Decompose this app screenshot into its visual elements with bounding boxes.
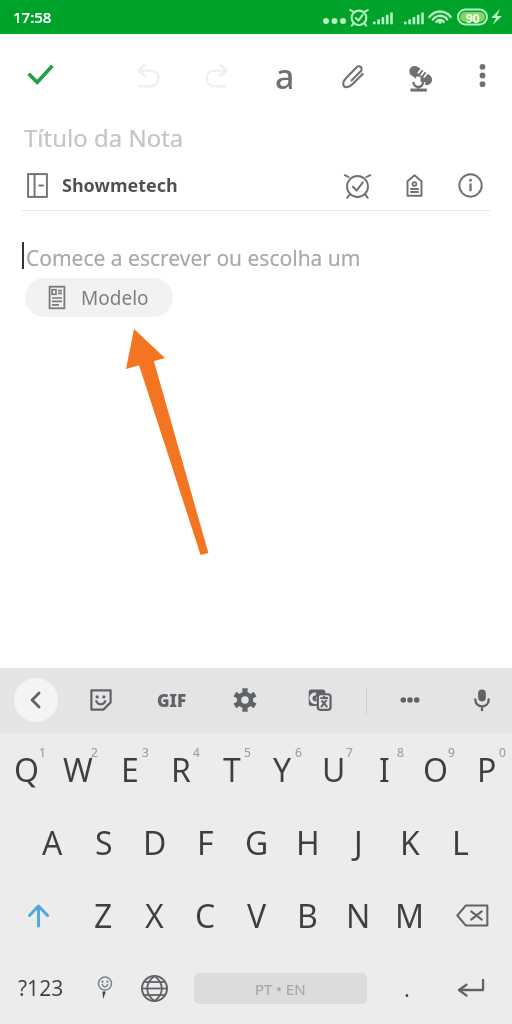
staticText: 5: [244, 744, 251, 760]
button[interactable]: GIF: [148, 678, 196, 722]
button[interactable]: Voice input: [460, 678, 504, 722]
button[interactable]: T: [206, 733, 257, 806]
staticText: 2: [91, 744, 98, 760]
button[interactable]: C: [180, 879, 231, 952]
staticText: a: [275, 53, 295, 97]
button[interactable]: W: [52, 733, 104, 806]
staticText: M: [395, 894, 425, 938]
staticText: O: [423, 748, 448, 792]
staticText: Comece a escrever ou escolha um: [26, 244, 361, 273]
button[interactable]: ?123: [0, 952, 82, 1024]
button[interactable]: Reminder: [339, 167, 375, 203]
button[interactable]: B: [282, 879, 333, 952]
button[interactable]: H: [282, 806, 333, 879]
staticText: U: [322, 748, 346, 792]
staticText: GIF: [157, 689, 187, 712]
button[interactable]: G: [231, 806, 282, 879]
button[interactable]: Info: [452, 167, 488, 203]
button[interactable]: Backspace: [437, 879, 507, 952]
staticText: D: [143, 821, 167, 865]
button[interactable]: PT • EN: [194, 973, 367, 1004]
staticText: 3: [142, 744, 149, 760]
staticText: Z: [94, 894, 113, 938]
staticText: V: [247, 894, 267, 938]
staticText: 17:58: [13, 7, 52, 27]
staticText: L: [452, 821, 469, 865]
staticText: 6: [295, 744, 302, 760]
button[interactable]: Attach: [330, 53, 374, 97]
button[interactable]: .: [380, 952, 434, 1024]
button[interactable]: V: [231, 879, 282, 952]
button[interactable]: D: [129, 806, 180, 879]
button[interactable]: N: [333, 879, 384, 952]
staticText: A: [42, 821, 63, 865]
button[interactable]: Translate: [298, 678, 342, 722]
staticText: H: [296, 821, 320, 865]
button[interactable]: Keyboard settings: [223, 678, 267, 722]
staticText: X: [145, 894, 164, 938]
button[interactable]: Shift: [0, 879, 77, 952]
button[interactable]: F: [180, 806, 231, 879]
button[interactable]: Change language: [128, 952, 180, 1024]
button[interactable]: Save note: [18, 53, 62, 97]
staticText: E: [121, 748, 139, 792]
staticText: .: [404, 973, 410, 1003]
button[interactable]: Q: [0, 733, 52, 806]
button[interactable]: M: [384, 879, 435, 952]
button[interactable]: Stickers: [79, 678, 123, 722]
button[interactable]: More options: [460, 53, 504, 97]
staticText: K: [400, 821, 420, 865]
button[interactable]: U: [308, 733, 359, 806]
staticText: C: [195, 894, 216, 938]
button[interactable]: A: [27, 806, 78, 879]
button[interactable]: Modelo: [25, 278, 173, 317]
staticText: Y: [273, 748, 292, 792]
staticText: Modelo: [81, 285, 149, 311]
button[interactable]: Z: [77, 879, 129, 952]
button[interactable]: Voice typing: [398, 53, 442, 97]
button[interactable]: I: [359, 733, 410, 806]
staticText: J: [354, 821, 363, 865]
staticText: 4: [193, 744, 200, 760]
button[interactable]: Redo: [194, 53, 238, 97]
staticText: W: [63, 748, 93, 792]
button[interactable]: P: [461, 733, 512, 806]
button[interactable]: E: [104, 733, 155, 806]
staticText: 1: [39, 744, 46, 760]
staticText: P: [477, 748, 497, 792]
button[interactable]: K: [384, 806, 435, 879]
button[interactable]: R: [155, 733, 206, 806]
staticText: Q: [14, 748, 39, 792]
button[interactable]: J: [333, 806, 384, 879]
button[interactable]: Y: [257, 733, 308, 806]
button[interactable]: More: [388, 678, 432, 722]
staticText: Showmetech: [62, 173, 178, 198]
staticText: 0: [499, 744, 506, 760]
staticText: B: [297, 894, 318, 938]
button[interactable]: Enter: [436, 952, 506, 1024]
staticText: 9: [448, 744, 455, 760]
staticText: S: [95, 821, 113, 865]
staticText: T: [223, 748, 241, 792]
button[interactable]: L: [435, 806, 486, 879]
staticText: 90: [466, 10, 480, 25]
staticText: F: [197, 821, 214, 865]
button[interactable]: Back: [14, 678, 58, 722]
staticText: N: [346, 894, 371, 938]
button[interactable]: Text format: [263, 53, 307, 97]
staticText: 8: [397, 744, 404, 760]
button[interactable]: Undo: [126, 53, 170, 97]
staticText: Título da Nota: [24, 121, 184, 154]
button[interactable]: Emoji and comma: [82, 952, 128, 1024]
staticText: R: [171, 748, 191, 792]
button[interactable]: O: [410, 733, 461, 806]
button[interactable]: S: [78, 806, 129, 879]
staticText: I: [379, 748, 390, 792]
staticText: PT • EN: [255, 979, 306, 999]
staticText: ?123: [18, 974, 64, 1003]
button[interactable]: X: [129, 879, 180, 952]
staticText: 7: [346, 744, 353, 760]
button[interactable]: Label: [396, 167, 432, 203]
staticText: G: [245, 821, 269, 865]
